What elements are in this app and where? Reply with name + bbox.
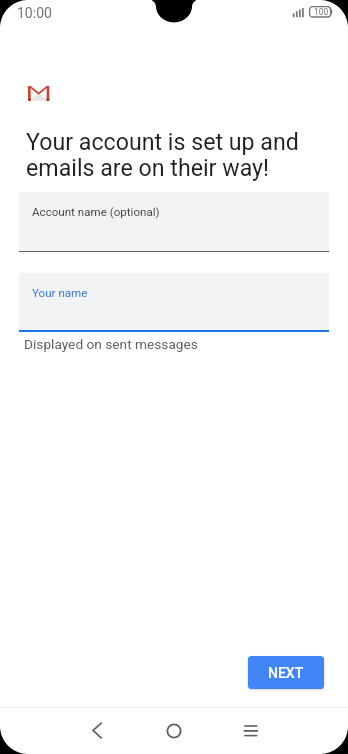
button[interactable]: Your name [19, 273, 329, 330]
button[interactable]: Back [75, 708, 119, 753]
staticText: Displayed on sent messages [24, 336, 198, 352]
staticText: Your account is set up and emails are on… [26, 130, 304, 182]
staticText: 100 [314, 7, 329, 17]
button[interactable]: NEXT [248, 656, 324, 689]
button[interactable]: Home [152, 708, 196, 753]
staticText: Your name [32, 286, 88, 300]
staticText: Account name (optional) [32, 205, 160, 219]
button[interactable]: Account name (optional) [19, 192, 329, 251]
staticText: 10:00 [17, 5, 52, 21]
button[interactable]: Recent apps [229, 708, 273, 753]
staticText: NEXT [268, 665, 304, 681]
